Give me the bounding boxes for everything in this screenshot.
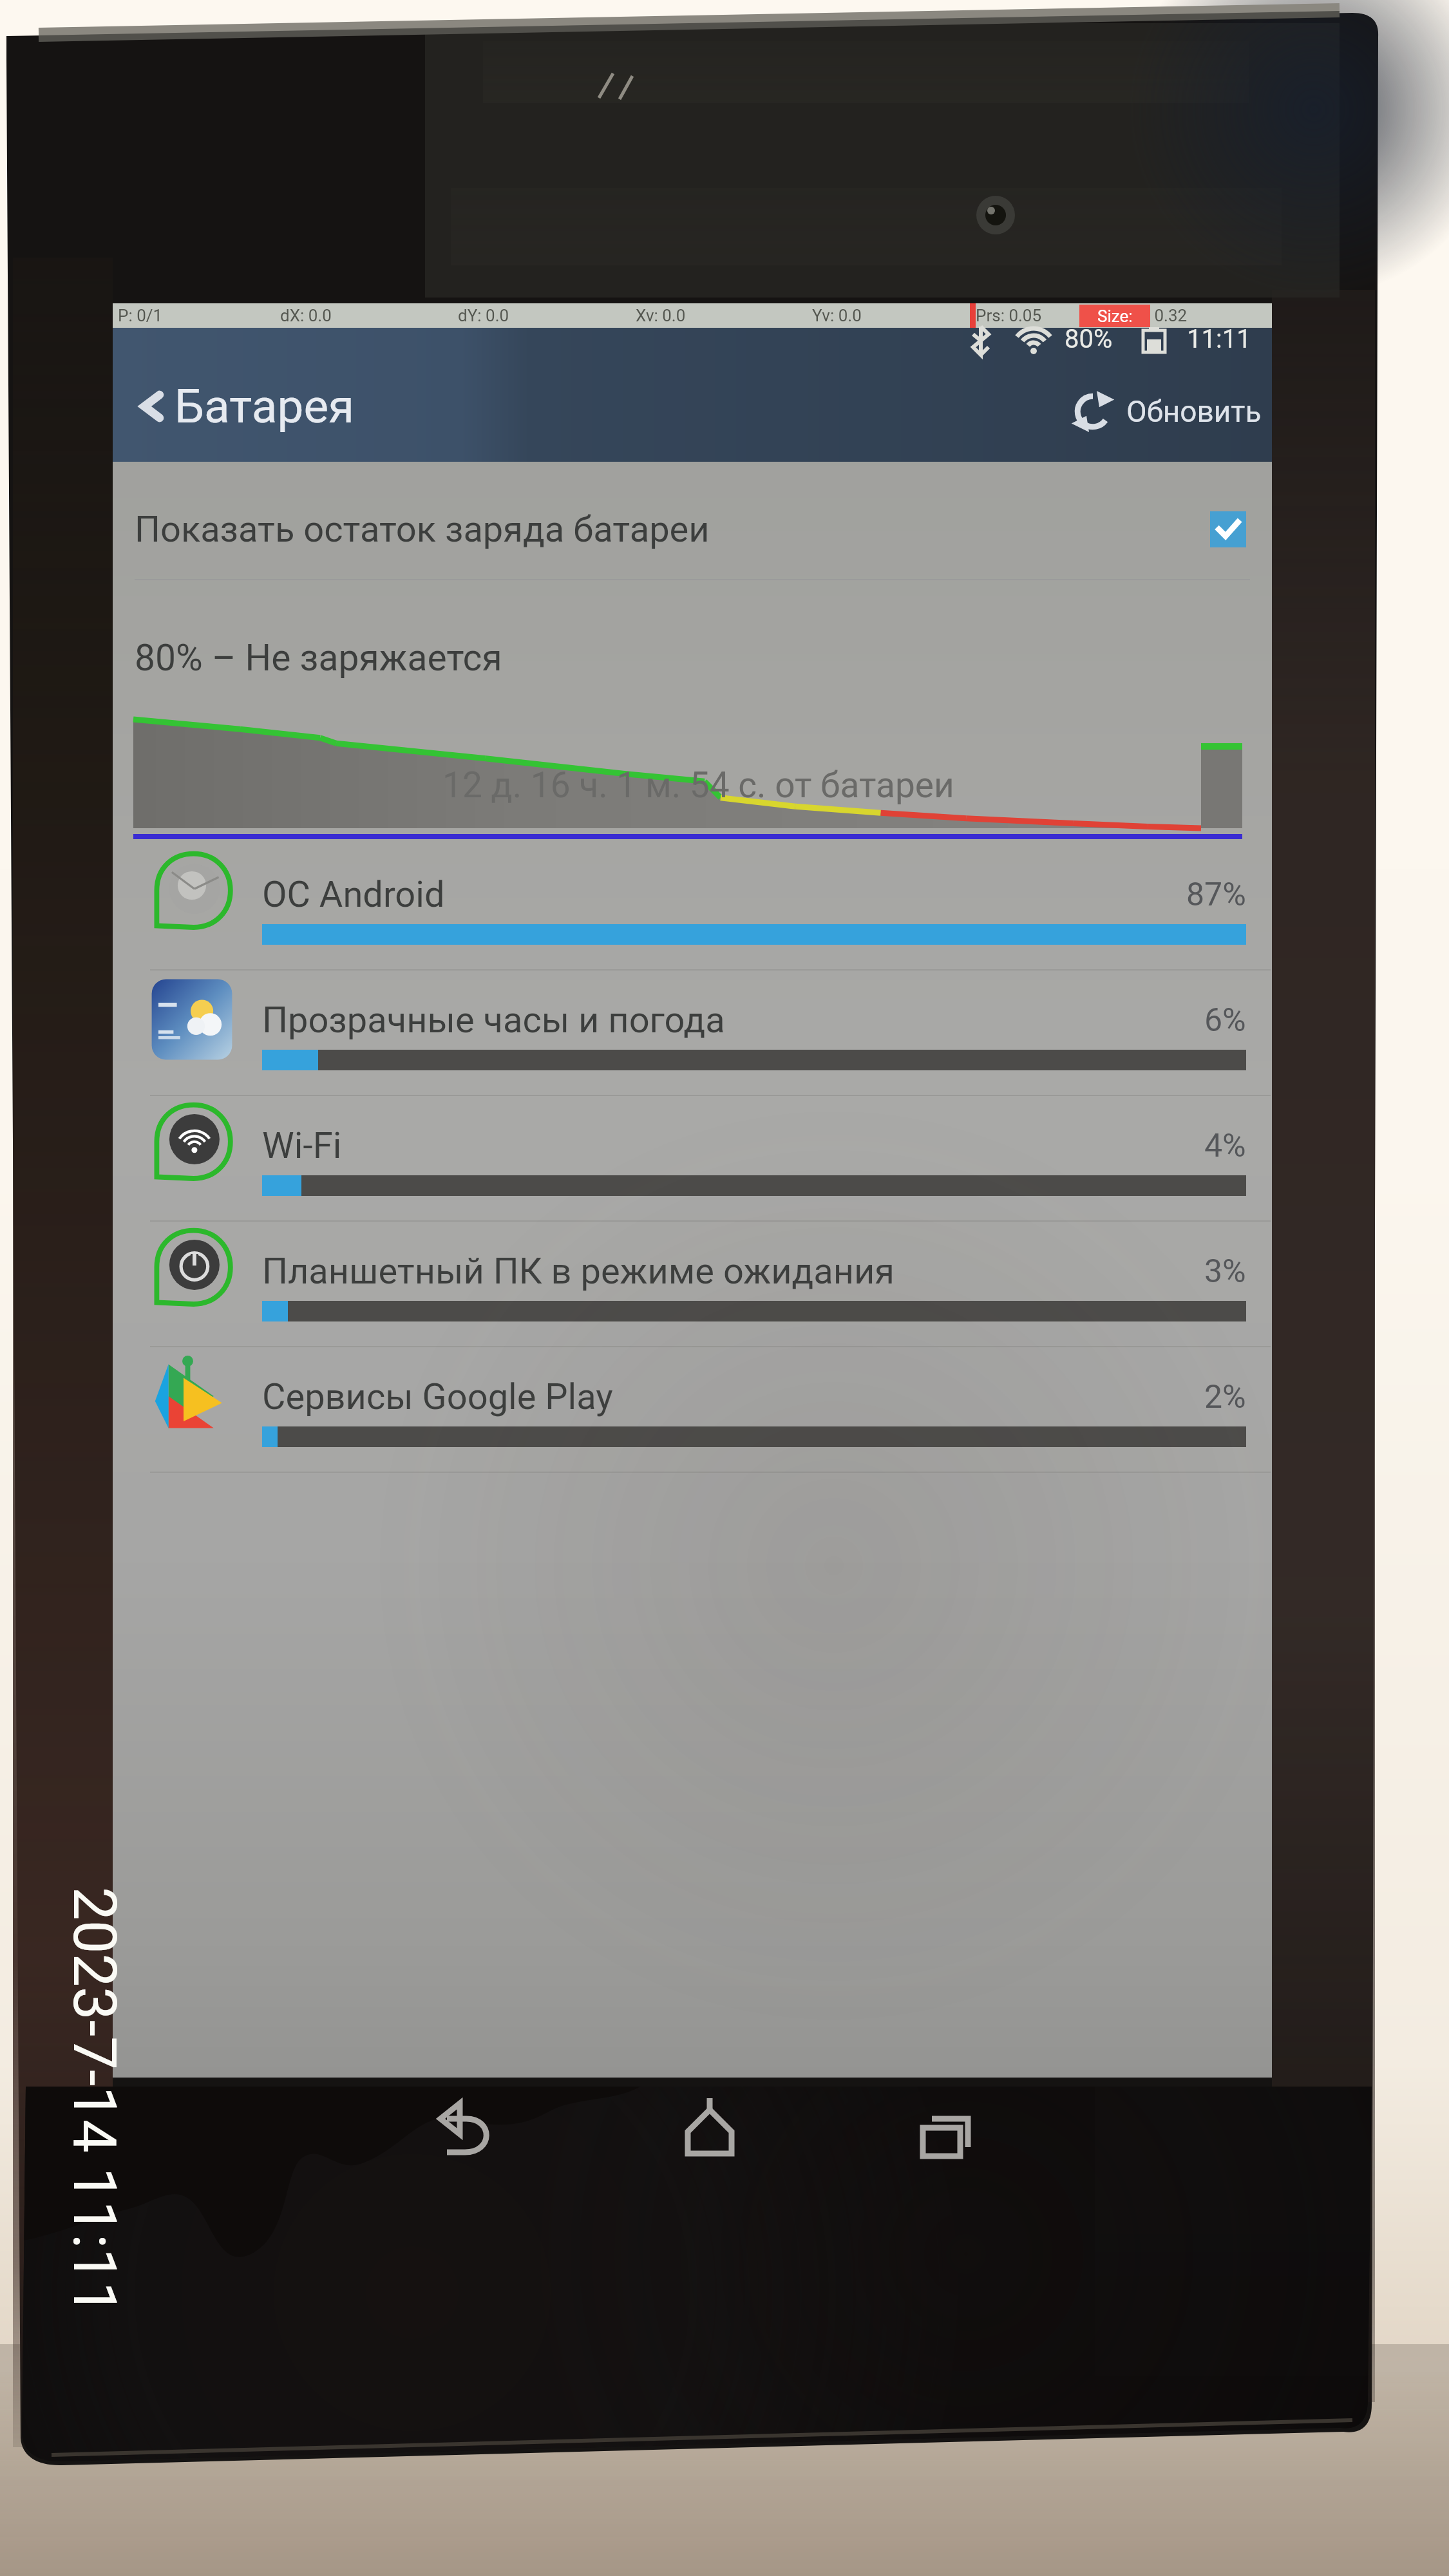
staticText: dX: 0.0 xyxy=(280,306,332,325)
button[interactable]: Батарея xyxy=(113,328,1272,462)
staticText: ОС Android xyxy=(262,873,445,916)
staticText: Обновить xyxy=(1126,394,1262,429)
staticText: Wi-Fi xyxy=(262,1124,342,1167)
button[interactable]: Wi-Fi xyxy=(113,1098,1272,1224)
button[interactable]: Обновить xyxy=(1070,388,1262,435)
staticText: dY: 0.0 xyxy=(458,306,509,325)
staticText: Size: xyxy=(1097,307,1133,326)
staticText: Prs: 0.05 xyxy=(976,306,1042,325)
staticText: 6% xyxy=(1204,1001,1246,1039)
staticText: 3% xyxy=(1204,1253,1246,1291)
button[interactable]: ОС Android xyxy=(113,847,1272,972)
other: Обновить xyxy=(1070,388,1116,435)
staticText: Сервисы Google Play xyxy=(262,1376,613,1418)
staticText: 80% – Не заряжается xyxy=(135,636,502,679)
staticText: Планшетный ПК в режиме ожидания xyxy=(262,1250,895,1293)
staticText: 0.32 xyxy=(1150,306,1188,325)
staticText: 2023-7-14 11:11 xyxy=(61,1887,129,2315)
staticText: Показать остаток заряда батареи xyxy=(135,508,710,551)
staticText: P: 0/1 xyxy=(118,306,163,325)
button[interactable]: Планшетный ПК в режиме ожидания xyxy=(113,1224,1272,1349)
staticText: 80% xyxy=(1065,324,1113,354)
button[interactable]: Прозрачные часы и погода xyxy=(113,972,1272,1098)
staticText: Прозрачные часы и погода xyxy=(262,999,725,1041)
staticText: Xv: 0.0 xyxy=(636,306,686,325)
staticText: 4% xyxy=(1204,1127,1246,1165)
staticText: 11:11 xyxy=(1187,324,1251,354)
staticText: 12 д. 16 ч. 1 м. 54 с. от батареи xyxy=(442,764,954,806)
staticText: 87% xyxy=(1186,876,1246,914)
button[interactable]: Сервисы Google Play xyxy=(113,1349,1272,1475)
staticText: Батарея xyxy=(175,379,355,434)
button[interactable]: Показать остаток заряда батареи xyxy=(113,476,1272,583)
staticText: 2% xyxy=(1204,1378,1246,1416)
staticText: Yv: 0.0 xyxy=(812,306,862,325)
